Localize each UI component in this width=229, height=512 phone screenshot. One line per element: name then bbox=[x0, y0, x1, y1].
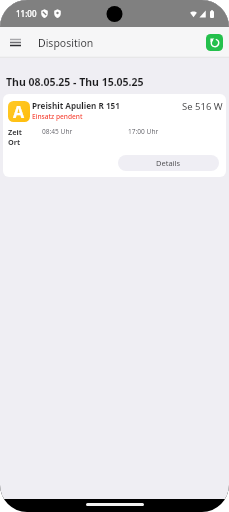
button[interactable]: Details bbox=[118, 155, 219, 171]
staticText: Preishit Apulien R 151 bbox=[32, 100, 120, 111]
button[interactable]: A bbox=[3, 94, 226, 177]
staticText: Thu 08.05.25 - Thu 15.05.25 bbox=[6, 75, 144, 89]
staticText: Ort bbox=[8, 137, 21, 147]
staticText: A bbox=[13, 101, 25, 122]
staticText: Einsatz pendent bbox=[32, 112, 83, 121]
button[interactable]: Open navigation menu bbox=[0, 27, 31, 58]
staticText: Zeit bbox=[8, 127, 22, 137]
staticText: 17:00 Uhr bbox=[128, 127, 159, 136]
staticText: 11:00 bbox=[16, 8, 37, 19]
staticText: Se 516 W bbox=[182, 100, 223, 113]
staticText: Disposition bbox=[38, 36, 94, 50]
button[interactable]: Refresh bbox=[206, 34, 223, 51]
staticText: Details bbox=[156, 158, 181, 168]
staticText: 08:45 Uhr bbox=[42, 127, 128, 136]
